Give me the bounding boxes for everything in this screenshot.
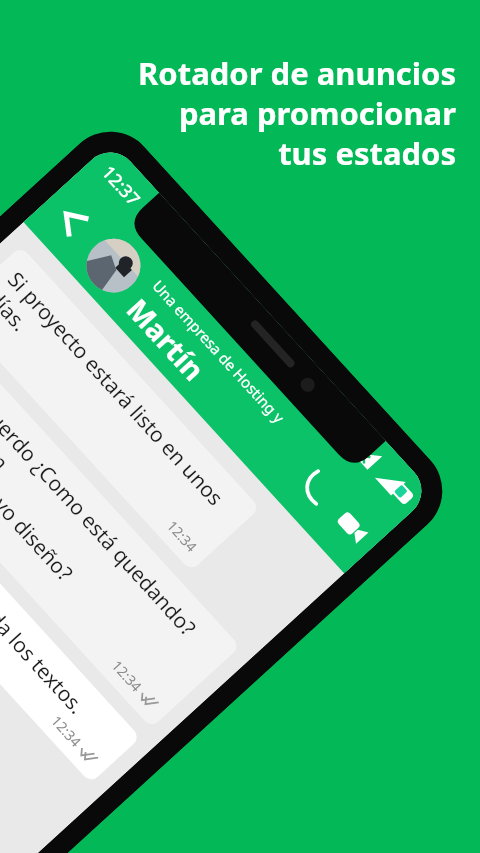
staticText: De acuerdo ¿Como está quedando? ¿Lograro… [0,365,222,700]
button[interactable]: Video call [314,489,390,565]
button[interactable]: Call [278,449,354,525]
staticText: Si proyecto estará listo en unos días. [0,266,242,543]
staticText: 12:34 [108,656,146,695]
staticText: Una empresa de Hosting y Desarrollo [148,276,320,460]
staticText: Rotador de anuncios para promocionar tus… [138,52,456,174]
staticText: 12:37 [96,160,146,212]
staticText: Recuerda los textos. [0,554,91,720]
staticText: Martín [119,290,214,389]
staticText: 12:34 [163,516,201,556]
staticText: 12:34 [47,711,86,751]
button[interactable]: Back [47,195,103,252]
